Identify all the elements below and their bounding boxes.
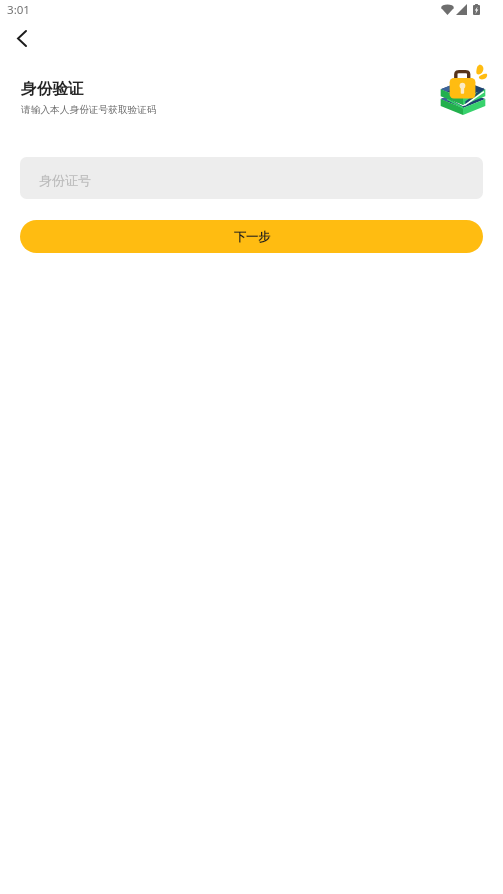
button[interactable]: 下一步 (20, 220, 483, 253)
staticText: 请输入本人身份证号获取验证码 (21, 104, 157, 116)
staticText: 3:01 (7, 2, 31, 18)
button[interactable]: Back (8, 24, 36, 52)
button[interactable]: 身份证号 (20, 157, 483, 199)
staticText: 身份证号 (39, 172, 91, 188)
staticText: 身份验证 (21, 79, 84, 99)
staticText: 下一步 (234, 229, 270, 244)
